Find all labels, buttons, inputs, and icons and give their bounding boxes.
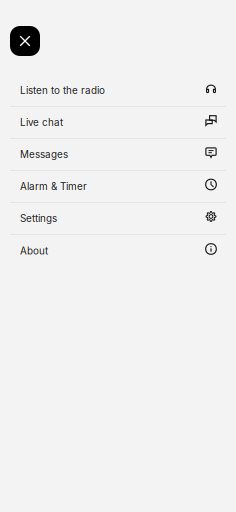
button[interactable]: Close	[10, 26, 40, 56]
button[interactable]: About	[0, 235, 236, 267]
button[interactable]: Alarm & Timer	[0, 171, 236, 203]
staticText: About	[20, 245, 48, 257]
button[interactable]: Messages	[0, 139, 236, 171]
staticText: Messages	[20, 148, 68, 160]
button[interactable]: Live chat	[0, 107, 236, 139]
staticText: Listen to the radio	[20, 84, 105, 96]
button[interactable]: Settings	[0, 203, 236, 235]
staticText: Settings	[20, 212, 57, 224]
staticText: Alarm & Timer	[20, 180, 87, 192]
staticText: Live chat	[20, 116, 63, 128]
button[interactable]: Listen to the radio	[0, 75, 236, 107]
